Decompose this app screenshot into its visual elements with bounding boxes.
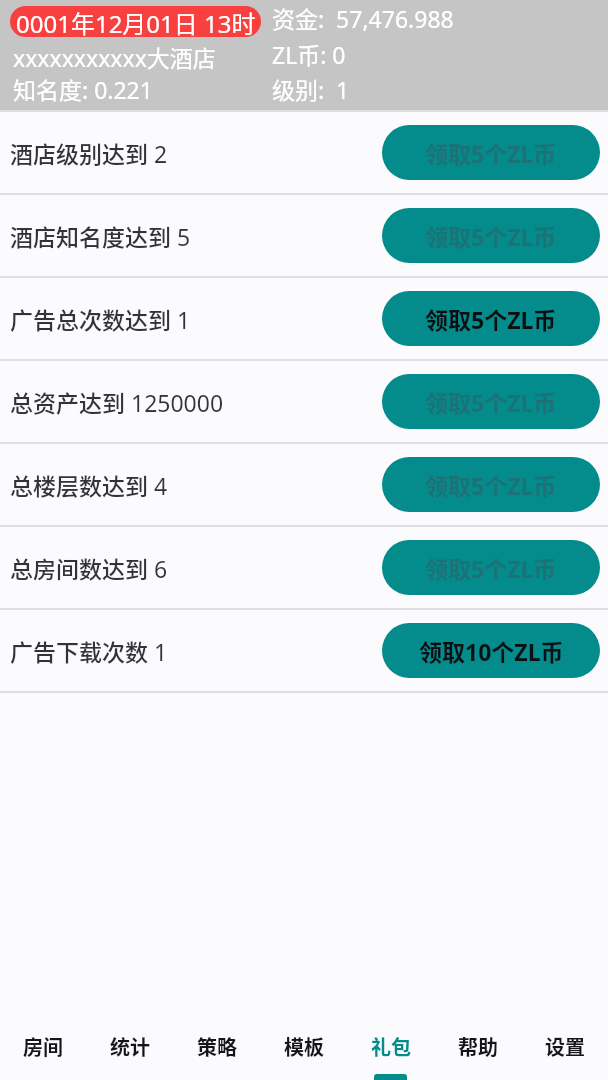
staticText: 级别: 1: [272, 72, 350, 105]
staticText: 模板: [284, 1032, 324, 1061]
staticText: 领取5个ZL币: [425, 468, 557, 501]
staticText: 广告下载次数 1: [10, 634, 382, 667]
staticText: 0001年12月01日 13时: [16, 6, 256, 36]
staticText: 领取10个ZL币: [419, 634, 564, 667]
staticText: 总资产达到 1250000: [10, 385, 382, 418]
staticText: 领取5个ZL币: [425, 219, 557, 252]
staticText: 知名度: 0.221: [13, 72, 153, 105]
staticText: ZL币: 0: [272, 37, 346, 70]
button[interactable]: 领取5个ZL币: [382, 540, 600, 595]
button[interactable]: 酒店知名度达到 5: [0, 195, 608, 276]
button[interactable]: 领取5个ZL币: [382, 457, 600, 512]
button[interactable]: 模板: [260, 1000, 347, 1080]
staticText: 领取5个ZL币: [425, 551, 557, 584]
button[interactable]: 帮助: [434, 1000, 521, 1080]
staticText: 酒店级别达到 2: [10, 136, 382, 169]
button[interactable]: 广告下载次数 1: [0, 610, 608, 691]
staticText: 房间: [23, 1032, 63, 1061]
staticText: 设置: [545, 1032, 585, 1061]
button[interactable]: 统计: [86, 1000, 173, 1080]
button[interactable]: 策略: [173, 1000, 260, 1080]
button[interactable]: 领取5个ZL币: [382, 374, 600, 429]
staticText: 总房间数达到 6: [10, 551, 382, 584]
button[interactable]: 领取10个ZL币: [382, 623, 600, 678]
staticText: 领取5个ZL币: [425, 136, 557, 169]
button[interactable]: 总楼层数达到 4: [0, 444, 608, 525]
button[interactable]: 领取5个ZL币: [382, 291, 600, 346]
button[interactable]: 广告总次数达到 1: [0, 278, 608, 359]
staticText: 资金: 57,476.988: [272, 1, 454, 34]
staticText: 广告总次数达到 1: [10, 302, 382, 335]
staticText: 礼包: [371, 1032, 411, 1061]
staticText: 策略: [197, 1032, 237, 1061]
staticText: 领取5个ZL币: [425, 302, 557, 335]
staticText: xxxxxxxxxxx大酒店: [13, 40, 216, 73]
staticText: 酒店知名度达到 5: [10, 219, 382, 252]
button[interactable]: 设置: [521, 1000, 608, 1080]
button[interactable]: 礼包: [347, 1000, 434, 1080]
button[interactable]: 领取5个ZL币: [382, 208, 600, 263]
staticText: 领取5个ZL币: [425, 385, 557, 418]
staticText: 总楼层数达到 4: [10, 468, 382, 501]
button[interactable]: 领取5个ZL币: [382, 125, 600, 180]
button[interactable]: 酒店级别达到 2: [0, 112, 608, 193]
button[interactable]: 总房间数达到 6: [0, 527, 608, 608]
staticText: 统计: [110, 1032, 150, 1061]
button[interactable]: 房间: [0, 1000, 86, 1080]
staticText: 帮助: [458, 1032, 498, 1061]
button[interactable]: 0001年12月01日 13时: [10, 6, 261, 37]
button[interactable]: 总资产达到 1250000: [0, 361, 608, 442]
